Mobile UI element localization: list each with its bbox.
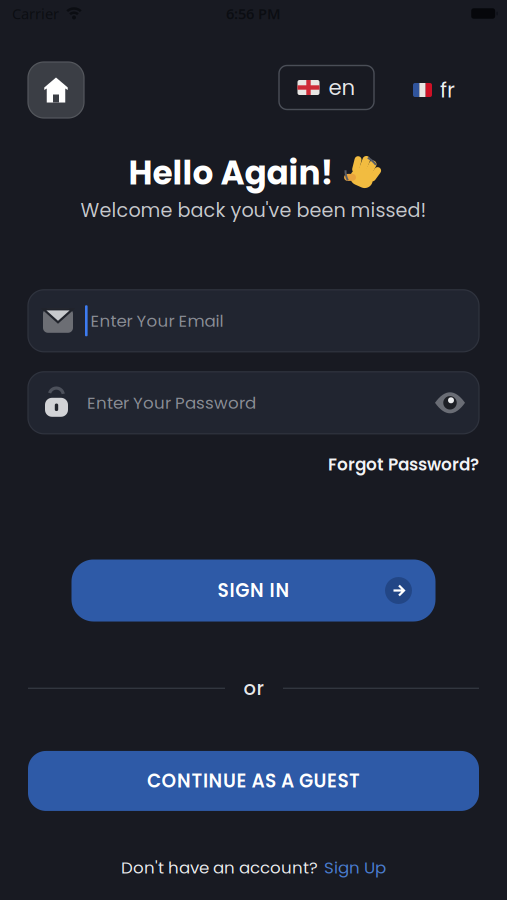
staticText: fr [440,75,455,105]
button[interactable]: Sign Up [324,856,386,879]
staticText: en [328,73,355,102]
staticText: Enter Your Email [91,309,224,332]
staticText: CONTINUE AS A GUEST [147,768,360,794]
staticText: Sign Up [324,856,386,879]
staticText: Enter Your Password [87,391,256,414]
button[interactable]: Show password [435,392,465,414]
button[interactable]: Forgot Password? [328,453,479,476]
button[interactable]: CONTINUE AS A GUEST [28,751,479,811]
button[interactable]: English [279,65,374,109]
staticText: Welcome back you've been missed! [80,197,426,224]
staticText: Don't have an account? [121,856,318,879]
staticText: or [243,674,264,702]
button[interactable]: French [374,75,455,105]
staticText: 6:56 PM [226,4,281,23]
staticText: SIGN IN [218,577,289,603]
staticText: Carrier [12,4,59,23]
staticText: Forgot Password? [328,453,479,476]
button[interactable]: SIGN IN [71,559,435,621]
button[interactable]: Home [28,62,84,118]
staticText: Hello Again! [128,150,333,196]
